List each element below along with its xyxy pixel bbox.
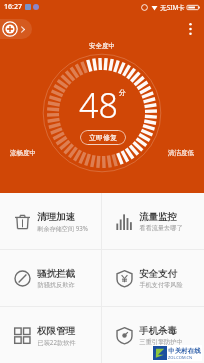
staticText: 剩余存储空间 93% [37,224,88,232]
button[interactable]: More options [176,15,204,43]
button[interactable]: 安全支付 [102,250,204,306]
staticText: 无SIM卡 [160,3,185,12]
staticText: 已装22款软件 [37,338,76,346]
staticText: 流畅度中 [10,149,36,157]
button[interactable]: Upgrade [0,19,32,39]
staticText: 防骚扰反欺诈 [37,281,75,289]
staticText: 三重引擎防护中 [139,338,183,346]
staticText: 清理加速 [37,211,75,223]
staticText: 安全支付 [139,268,177,280]
staticText: 流量监控 [139,211,177,223]
staticText: 48 [79,82,118,128]
button[interactable]: 清理加速 [0,193,101,249]
staticText: ZOL.COM.CN [168,355,192,360]
button[interactable]: 手机杀毒 [102,307,204,363]
staticText: 手机杀毒 [139,325,177,337]
staticText: 权限管理 [37,325,75,337]
staticText: 手机支付零风险 [139,281,183,289]
staticText: 立即修复 [89,133,117,142]
button[interactable]: 权限管理 [0,307,101,363]
staticText: 看看流量去哪了 [139,224,183,232]
staticText: 分 [119,88,126,97]
staticText: 清洁度低 [168,149,194,157]
button[interactable]: 骚扰拦截 [0,250,101,306]
button[interactable]: 流量监控 [102,193,204,249]
staticText: 骚扰拦截 [37,268,75,280]
staticText: 中关村在线 [168,347,201,355]
staticText: 安全度中 [89,42,115,50]
staticText: 16:27 [4,2,22,12]
other: Upgrade [2,21,18,37]
button[interactable]: 立即修复 [80,130,126,145]
